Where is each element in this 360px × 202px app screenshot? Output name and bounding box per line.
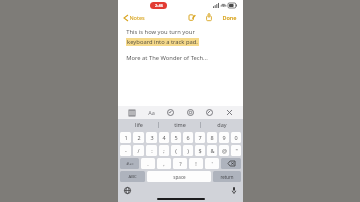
button[interactable]: Done [221,14,238,21]
staticText: , [163,160,165,167]
staticText: / [137,147,140,154]
button[interactable]: 5 [171,132,181,143]
button[interactable]: time [159,119,201,130]
staticText: ? [179,160,182,167]
staticText: . [147,160,149,167]
staticText: ; [163,147,165,154]
staticText: 5 [174,134,178,141]
button[interactable]: 7 [195,132,205,143]
staticText: 9 [222,134,226,141]
staticText: ( [175,147,177,154]
staticText: 4 [162,134,166,141]
button[interactable]: ; [159,145,169,156]
button[interactable]: Switch language [123,186,132,195]
staticText: 8 [210,134,214,141]
button[interactable]: 4 [159,132,169,143]
button[interactable]: space [147,171,211,182]
staticText: day [217,121,227,128]
staticText: ABC [128,174,137,180]
staticText: $ [198,147,202,154]
button[interactable]: ! [189,158,203,169]
staticText: space [173,174,186,180]
staticText: 1 [124,134,128,141]
button[interactable]: ) [183,145,193,156]
staticText: time [174,121,186,128]
staticText: & [210,147,215,154]
button[interactable]: #+= [120,158,139,169]
staticText: Aa [148,109,155,116]
staticText: keyboard into a track pad. [127,38,198,46]
button[interactable]: Table [127,108,136,117]
staticText: Done [222,14,237,21]
button[interactable]: 0 [231,132,241,143]
button[interactable]: 3 [146,132,157,143]
button[interactable]: Share [204,12,214,22]
staticText: life [135,121,143,128]
staticText: return [220,174,234,180]
button[interactable]: / [133,145,144,156]
button[interactable]: 2 [133,132,144,143]
staticText: ' [211,160,213,167]
button[interactable]: life [118,119,159,130]
button[interactable]: Text format [147,108,156,117]
button[interactable]: ABC [120,171,145,182]
button[interactable]: 6 [183,132,193,143]
staticText: @ [222,147,227,154]
button[interactable]: Camera [186,108,195,117]
staticText: Notes [129,14,145,21]
button[interactable]: Draw [205,108,214,117]
button[interactable]: Close keyboard [225,108,234,117]
button[interactable]: day [201,119,243,130]
staticText: 2:46 [155,3,163,8]
staticText: 3 [150,134,154,141]
button[interactable]: & [207,145,217,156]
staticText: 0 [234,134,238,141]
staticText: " [235,147,238,154]
button[interactable]: Dictate [229,186,238,195]
button[interactable]: ' [205,158,219,169]
staticText: 2 [137,134,141,141]
button[interactable]: 1 [120,132,131,143]
staticText: ! [195,160,197,167]
button[interactable]: Checklist [166,108,175,117]
button[interactable]: Backspace [221,158,241,169]
staticText: More at The Wonder of Tech... [126,54,208,62]
button[interactable]: ? [173,158,187,169]
button[interactable]: , [157,158,171,169]
button[interactable]: 9 [219,132,229,143]
button[interactable]: Notes [123,14,146,21]
button[interactable]: " [231,145,241,156]
staticText: : [151,147,153,154]
button[interactable]: return [213,171,241,182]
staticText: 6 [186,134,190,141]
staticText: This is how you turn your [126,28,195,36]
button[interactable]: ( [171,145,181,156]
staticText: ) [187,147,189,154]
staticText: - [125,147,127,154]
button[interactable]: : [146,145,157,156]
button[interactable]: - [120,145,131,156]
staticText: 7 [198,134,202,141]
button[interactable]: @ [219,145,229,156]
button[interactable]: $ [195,145,205,156]
staticText: #+= [126,161,134,167]
button[interactable]: . [141,158,155,169]
button[interactable]: Markup [187,12,197,22]
button[interactable]: 8 [207,132,217,143]
